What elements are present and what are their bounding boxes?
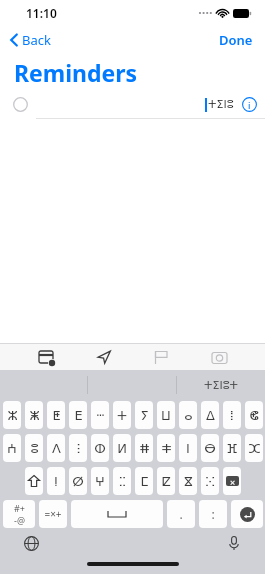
button[interactable]: ⵐ [157, 434, 175, 462]
staticText: ⴹ [74, 408, 83, 423]
button[interactable]: ⵜⵉⵏⵓⵜ [181, 373, 261, 397]
staticText: ⵈ [96, 408, 105, 423]
button[interactable]: ⵍ [113, 434, 131, 462]
staticText: ⵄ [7, 441, 17, 456]
button[interactable]: ⵏ [179, 434, 197, 462]
staticText: ⵖ [95, 474, 105, 489]
button[interactable]: Camera [208, 346, 230, 368]
button[interactable]: ⵠ [201, 401, 219, 429]
staticText: : [211, 506, 215, 522]
button[interactable] [231, 500, 263, 528]
button[interactable]: ⵣ [3, 401, 21, 429]
button[interactable]: ⵂ [223, 401, 241, 429]
button[interactable]: =×+ [39, 500, 67, 528]
staticText: × [230, 476, 236, 486]
staticText: ⵇ [162, 474, 171, 489]
button[interactable]: ⵌ [135, 434, 153, 462]
button[interactable] [71, 500, 163, 528]
button[interactable]: ⴱ [201, 434, 219, 462]
button[interactable]: ⵁ [69, 467, 87, 495]
staticText: ⵏ [186, 441, 190, 456]
button[interactable]: ⵓ [25, 434, 43, 462]
staticText: ⵂ [230, 408, 234, 423]
staticText: ⵁ [72, 474, 84, 489]
staticText: ⵜⵉⵏⵓⵜ [204, 379, 239, 392]
button[interactable]: ⵥ [25, 401, 43, 429]
staticText: i [248, 99, 251, 111]
staticText: ⵞ [249, 408, 259, 423]
staticText: ⵓ [30, 441, 39, 456]
staticText: ⴷ [52, 441, 61, 456]
staticText: ⵍ [117, 441, 127, 456]
button[interactable]: ⵀ [91, 434, 109, 462]
button[interactable]: ⵜ [113, 401, 131, 429]
staticText: ⵡ [161, 408, 171, 423]
button[interactable]: × [223, 467, 241, 495]
staticText: #+ -@ [14, 502, 25, 526]
button[interactable]: ⴷ [47, 434, 65, 462]
staticText: Done [219, 31, 253, 49]
staticText: 11:10 [26, 5, 57, 21]
button[interactable]: ⵋ [245, 434, 263, 462]
button[interactable]: Done [215, 28, 257, 52]
staticText: ⵋ [248, 441, 261, 456]
staticText: ⵐ [161, 441, 172, 456]
staticText: =×+ [44, 507, 62, 521]
button[interactable]: ⴹ [69, 401, 87, 429]
button[interactable]: ⵢ [135, 401, 153, 429]
button[interactable]: Reminder details [242, 97, 257, 112]
button[interactable]: Dictate [223, 532, 245, 554]
staticText: ⵀ [94, 441, 106, 456]
button[interactable]: ⵟ [47, 401, 65, 429]
button[interactable]: ⵗ [69, 434, 87, 462]
staticText: ⴱ [204, 441, 216, 456]
staticText: Back [22, 31, 51, 49]
staticText: ⵠ [206, 408, 215, 423]
staticText: ⵢ [140, 408, 149, 423]
staticText: ⴰ [184, 408, 193, 423]
staticText: ⵎ [140, 474, 149, 489]
staticText: ⵜ [117, 408, 127, 423]
button[interactable]: ⵑ [47, 467, 65, 495]
button[interactable]: ⵞ [245, 401, 263, 429]
staticText: ⵘ [205, 474, 215, 489]
button[interactable]: : [199, 500, 227, 528]
button[interactable]: ⵘ [201, 467, 219, 495]
button[interactable]: Location [93, 346, 115, 368]
button[interactable]: ⵖ [91, 467, 109, 495]
button[interactable]: ⴰ [179, 401, 197, 429]
button[interactable]: ⵆ [113, 467, 131, 495]
button[interactable]: Schedule [35, 346, 57, 368]
button[interactable]: Flag [150, 346, 172, 368]
button[interactable]: ⴼ [223, 434, 241, 462]
staticText: ⵗ [76, 441, 81, 456]
button[interactable]: #+ -@ [3, 500, 35, 528]
staticText: ⵣ [7, 408, 18, 423]
button[interactable]: ⵎ [135, 467, 153, 495]
button[interactable] [25, 467, 43, 495]
button[interactable]: Back [6, 28, 55, 52]
button[interactable]: ⴵ [179, 467, 197, 495]
button[interactable]: . [167, 500, 195, 528]
button[interactable]: Complete reminder [13, 97, 28, 112]
staticText: ⵑ [54, 474, 58, 489]
staticText: ⵌ [139, 441, 150, 456]
button[interactable]: ⵇ [157, 467, 175, 495]
staticText: ⵥ [29, 408, 40, 423]
button[interactable]: ⵄ [3, 434, 21, 462]
button[interactable]: ⵡ [157, 401, 175, 429]
staticText: ⵆ [119, 474, 126, 489]
staticText: ⵜⵉⵏⵓ [208, 98, 234, 111]
button[interactable]: Change keyboard [20, 532, 42, 554]
staticText: . [179, 506, 183, 522]
button[interactable]: ⵈ [91, 401, 109, 429]
staticText: Reminders [14, 57, 138, 88]
staticText: ⴵ [184, 474, 193, 489]
staticText: ⵟ [52, 408, 61, 423]
staticText: ⴼ [226, 441, 238, 456]
